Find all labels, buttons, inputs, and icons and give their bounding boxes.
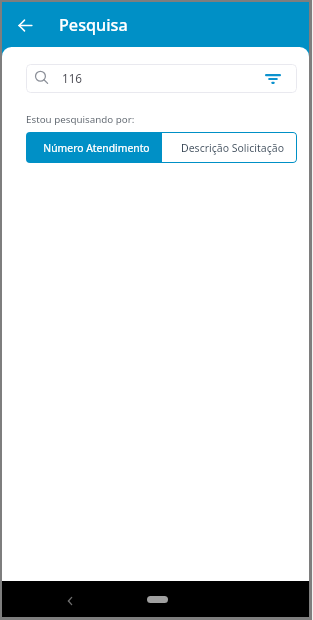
button[interactable]: Número Atendimento <box>26 132 161 163</box>
button[interactable]: Back <box>60 591 80 611</box>
button[interactable]: Back <box>10 10 40 40</box>
staticText: Número Atendimento <box>43 141 150 155</box>
staticText: Descrição Solicitação <box>181 141 284 155</box>
button[interactable]: Home <box>147 596 168 603</box>
staticText: Pesquisa <box>59 14 128 36</box>
staticText: Estou pesquisando por: <box>26 113 135 126</box>
button[interactable]: Filter <box>263 69 283 89</box>
button[interactable]: Descrição Solicitação <box>161 132 297 163</box>
button[interactable]: 116 <box>26 64 297 93</box>
staticText: 116 <box>62 70 83 86</box>
